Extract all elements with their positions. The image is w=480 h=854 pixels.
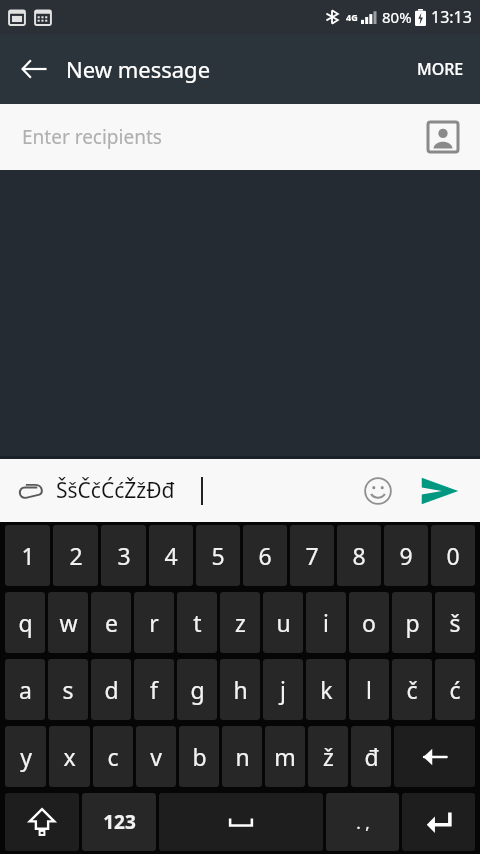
button[interactable]: ž bbox=[308, 726, 348, 787]
staticText: r bbox=[149, 607, 159, 638]
staticText: 6 bbox=[258, 540, 272, 571]
button[interactable]: ć bbox=[435, 659, 475, 720]
button[interactable]: v bbox=[136, 726, 176, 787]
staticText: 4G bbox=[346, 11, 358, 23]
staticText: w bbox=[59, 607, 78, 638]
staticText: 123 bbox=[103, 809, 136, 835]
button[interactable]: Emoji bbox=[358, 471, 398, 511]
button[interactable]: k bbox=[306, 659, 346, 720]
button[interactable]: 123 bbox=[82, 793, 156, 851]
button[interactable]: q bbox=[5, 592, 45, 653]
staticText: e bbox=[105, 607, 118, 638]
button[interactable]: f bbox=[134, 659, 174, 720]
button[interactable]: t bbox=[177, 592, 217, 653]
button[interactable]: x bbox=[49, 726, 90, 787]
button[interactable]: i bbox=[306, 592, 346, 653]
button[interactable]: m bbox=[265, 726, 305, 787]
button[interactable]: đ bbox=[351, 726, 391, 787]
button[interactable]: š bbox=[435, 592, 475, 653]
staticText: MORE bbox=[417, 58, 464, 80]
staticText: g bbox=[190, 674, 205, 705]
button[interactable]: o bbox=[349, 592, 389, 653]
button[interactable]: 6 bbox=[243, 525, 287, 586]
button[interactable]: MORE bbox=[401, 42, 480, 96]
button[interactable]: 0 bbox=[431, 525, 475, 586]
staticText: 3 bbox=[117, 540, 131, 571]
button[interactable]: y bbox=[5, 726, 46, 787]
button[interactable]: c bbox=[93, 726, 133, 787]
staticText: 80% bbox=[382, 7, 412, 27]
staticText: z bbox=[235, 607, 246, 638]
staticText: 1 bbox=[21, 540, 35, 571]
button[interactable]: p bbox=[392, 592, 432, 653]
staticText: m bbox=[274, 741, 296, 772]
button[interactable]: w bbox=[48, 592, 88, 653]
staticText: š bbox=[449, 607, 461, 638]
staticText: 2 bbox=[69, 540, 83, 571]
staticText: 5 bbox=[211, 540, 225, 571]
button[interactable]: Backspace bbox=[394, 726, 475, 787]
staticText: h bbox=[233, 674, 248, 705]
staticText: u bbox=[276, 607, 291, 638]
button[interactable]: 1 bbox=[5, 525, 50, 586]
button[interactable]: h bbox=[220, 659, 260, 720]
staticText: . , bbox=[356, 811, 370, 834]
staticText: q bbox=[18, 607, 33, 638]
staticText: ŠšČčĆćŽžĐđ bbox=[56, 476, 175, 505]
staticText: t bbox=[193, 607, 202, 638]
button[interactable]: j bbox=[263, 659, 303, 720]
button[interactable]: 9 bbox=[384, 525, 428, 586]
button[interactable]: d bbox=[91, 659, 131, 720]
staticText: p bbox=[405, 607, 420, 638]
button[interactable]: a bbox=[5, 659, 45, 720]
staticText: o bbox=[362, 607, 376, 638]
staticText: 0 bbox=[446, 540, 460, 571]
button[interactable]: 7 bbox=[290, 525, 334, 586]
button[interactable]: e bbox=[91, 592, 131, 653]
button[interactable]: 4 bbox=[149, 525, 193, 586]
button[interactable]: b bbox=[179, 726, 219, 787]
staticText: 8 bbox=[352, 540, 366, 571]
button[interactable]: l bbox=[349, 659, 389, 720]
button[interactable]: g bbox=[177, 659, 217, 720]
staticText: ć bbox=[449, 674, 461, 705]
button[interactable]: 8 bbox=[337, 525, 381, 586]
button[interactable]: n bbox=[222, 726, 262, 787]
button[interactable]: 2 bbox=[53, 525, 98, 586]
staticText: b bbox=[192, 741, 207, 772]
button[interactable]: č bbox=[392, 659, 432, 720]
staticText: i bbox=[323, 607, 329, 638]
button[interactable]: Back bbox=[8, 43, 60, 95]
staticText: s bbox=[62, 674, 74, 705]
staticText: a bbox=[19, 674, 32, 705]
button[interactable]: 5 bbox=[196, 525, 240, 586]
button[interactable]: s bbox=[48, 659, 88, 720]
staticText: 9 bbox=[399, 540, 413, 571]
button[interactable]: Attach bbox=[8, 469, 52, 513]
staticText: j bbox=[280, 674, 286, 705]
button[interactable]: Enter recipients bbox=[0, 104, 480, 170]
staticText: 7 bbox=[305, 540, 319, 571]
button[interactable]: . , bbox=[326, 793, 399, 851]
button[interactable]: Add contact bbox=[426, 120, 460, 154]
staticText: y bbox=[20, 741, 32, 772]
button[interactable]: z bbox=[220, 592, 260, 653]
staticText: 4 bbox=[164, 540, 178, 571]
staticText: k bbox=[320, 674, 333, 705]
staticText: New message bbox=[66, 54, 211, 84]
button[interactable]: Send bbox=[412, 463, 468, 519]
staticText: f bbox=[150, 674, 158, 705]
staticText: Enter recipients bbox=[22, 124, 162, 150]
staticText: đ bbox=[364, 741, 379, 772]
staticText: x bbox=[63, 741, 76, 772]
button[interactable]: Enter bbox=[402, 793, 475, 851]
staticText: d bbox=[104, 674, 119, 705]
button[interactable]: 3 bbox=[101, 525, 146, 586]
button[interactable]: u bbox=[263, 592, 303, 653]
staticText: n bbox=[235, 741, 250, 772]
button[interactable]: Shift bbox=[5, 793, 79, 851]
button[interactable]: r bbox=[134, 592, 174, 653]
staticText: ž bbox=[323, 741, 334, 772]
staticText: č bbox=[406, 674, 418, 705]
button[interactable]: Space bbox=[159, 793, 323, 851]
